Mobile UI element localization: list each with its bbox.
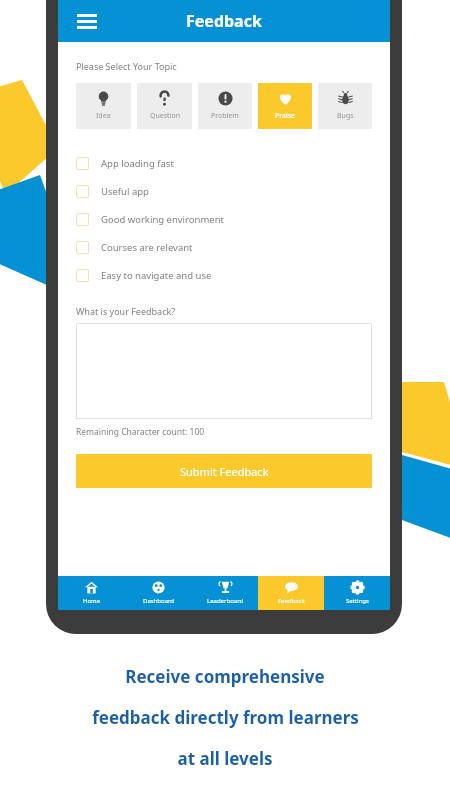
- button[interactable]: Open menu: [74, 8, 100, 34]
- staticText: feedback directly from learners: [92, 706, 359, 729]
- staticText: Question: [150, 111, 180, 121]
- staticText: Problem: [211, 111, 239, 121]
- staticText: Receive comprehensive: [125, 665, 325, 688]
- staticText: Feedback: [186, 10, 262, 32]
- button[interactable]: Dashboard: [125, 576, 192, 610]
- staticText: Feedback: [278, 597, 305, 605]
- button[interactable]: App loading fast: [76, 149, 372, 177]
- button[interactable]: Feedback: [258, 576, 324, 610]
- button[interactable]: [76, 323, 372, 419]
- staticText: Easy to navigate and use: [101, 269, 212, 282]
- button[interactable]: Easy to navigate and use: [76, 261, 372, 289]
- button[interactable]: Useful app: [76, 177, 372, 205]
- staticText: Leaderboard: [207, 597, 244, 605]
- button[interactable]: Question: [137, 83, 192, 129]
- staticText: Good working environment: [101, 213, 224, 226]
- staticText: Please Select Your Topic: [76, 60, 177, 72]
- staticText: Useful app: [101, 185, 149, 198]
- staticText: Submit Feedback: [180, 464, 269, 479]
- staticText: at all levels: [177, 747, 273, 770]
- staticText: Dashboard: [143, 597, 175, 605]
- staticText: Praise: [275, 111, 296, 121]
- staticText: Remaining Character count: 100: [76, 426, 205, 438]
- button[interactable]: Good working environment: [76, 205, 372, 233]
- button[interactable]: Problem: [198, 83, 252, 129]
- button[interactable]: Settings: [324, 576, 390, 610]
- button[interactable]: Idea: [76, 83, 131, 129]
- button[interactable]: Submit Feedback: [76, 454, 372, 488]
- button[interactable]: Leaderboard: [192, 576, 258, 610]
- staticText: Courses are relevant: [101, 241, 193, 254]
- staticText: Idea: [96, 111, 111, 121]
- button[interactable]: Courses are relevant: [76, 233, 372, 261]
- staticText: App loading fast: [101, 157, 174, 170]
- button[interactable]: Praise: [258, 83, 312, 129]
- button[interactable]: Home: [58, 576, 125, 610]
- button[interactable]: Bugs: [318, 83, 372, 129]
- staticText: Home: [83, 597, 101, 605]
- staticText: Bugs: [337, 111, 354, 121]
- staticText: Settings: [346, 597, 369, 605]
- staticText: What is your Feedback?: [76, 305, 176, 317]
